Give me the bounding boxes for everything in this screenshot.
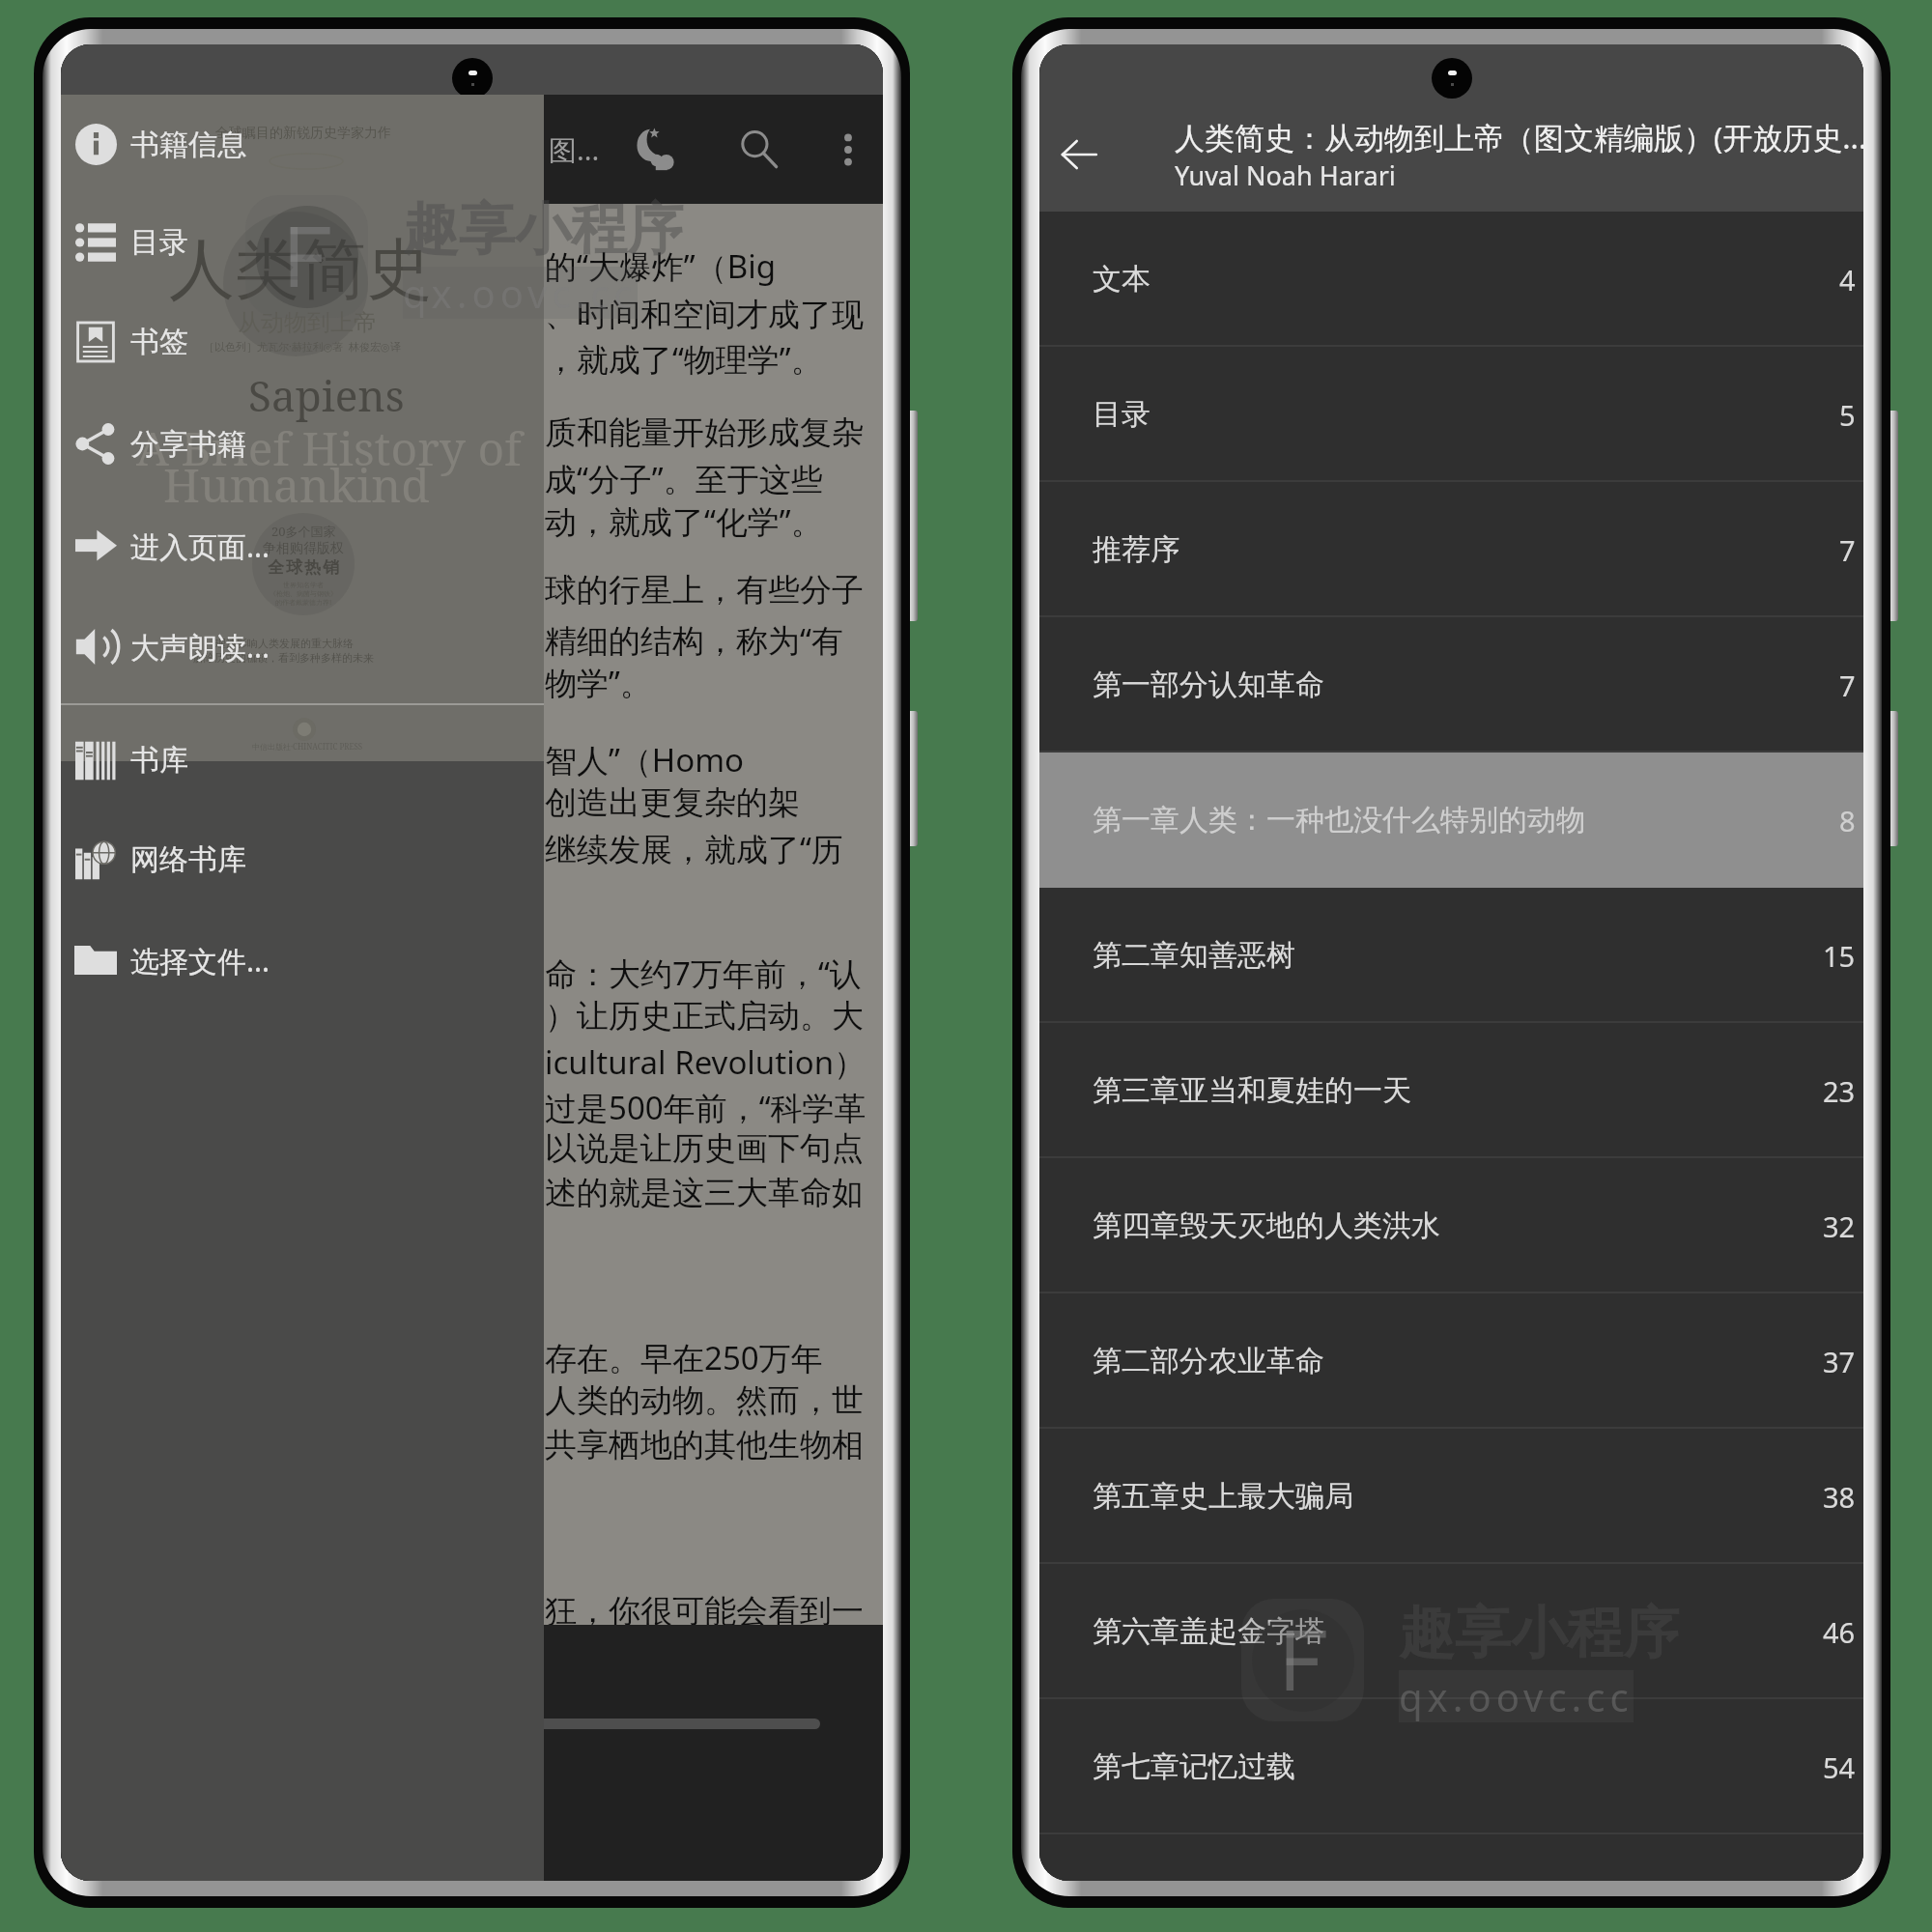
staticText: 54 xyxy=(1823,1748,1856,1786)
button[interactable]: 大声朗读... xyxy=(61,597,544,696)
button[interactable]: 第一章人类：一种也没什么特别的动物 xyxy=(1039,753,1863,888)
staticText: ，就成了“物理学”。 xyxy=(545,337,823,381)
staticText: 的作者戴蒙德力荐! xyxy=(275,598,332,608)
button[interactable]: 选择文件... xyxy=(61,909,544,1011)
staticText: 书签 xyxy=(130,324,188,360)
staticText: 4 xyxy=(1839,261,1856,298)
staticText: 图... xyxy=(549,130,600,169)
staticText: 23 xyxy=(1823,1072,1856,1110)
staticText: 分享书籍 xyxy=(130,426,246,463)
staticText: 过是500年前，“科学革 xyxy=(545,1086,867,1129)
staticText: 解除历史的枷锁，看到多种多样的未来 xyxy=(193,651,374,665)
staticText: 的“大爆炸”（Big xyxy=(545,244,776,288)
staticText: 第六章盖起金字塔 xyxy=(1093,1613,1823,1650)
button[interactable]: 第七章记忆过载 xyxy=(1039,1699,1863,1834)
staticText: 7 xyxy=(1839,667,1856,704)
staticText: 书籍信息 xyxy=(130,127,246,163)
staticText: 狂，你很可能会看到一 xyxy=(545,1591,864,1632)
staticText: 5 xyxy=(1839,396,1856,434)
staticText: A Brief History of xyxy=(136,416,522,479)
button[interactable]: 进入页面... xyxy=(61,495,544,597)
staticText: 争相购得版权 xyxy=(263,540,344,557)
staticText: 述的就是这三大革命如 xyxy=(545,1173,864,1213)
button[interactable]: 第五章史上最大骗局 xyxy=(1039,1429,1863,1564)
staticText: 共享栖地的其他生物相 xyxy=(545,1425,864,1465)
staticText: qx.oovc.cc xyxy=(403,267,638,319)
staticText: 从动物到上帝 xyxy=(238,308,377,337)
staticText: 32 xyxy=(1823,1207,1856,1245)
button[interactable]: 书籍信息 xyxy=(61,95,544,194)
staticText: 中信出版社·CHINACITIC PRESS xyxy=(252,741,363,752)
staticText: 精细的结构，称为“有 xyxy=(545,618,843,662)
staticText: 目录 xyxy=(130,224,188,261)
staticText: 第一章人类：一种也没什么特别的动物 xyxy=(1093,802,1839,838)
button[interactable]: 书签 xyxy=(61,291,544,393)
staticText: Yuval Noah Harari xyxy=(1175,157,1396,193)
staticText: 人类的动物。然而，世 xyxy=(545,1380,864,1421)
staticText: 大声朗读... xyxy=(130,627,270,667)
button[interactable]: Back xyxy=(1039,98,1119,212)
staticText: 8 xyxy=(1839,802,1856,839)
button[interactable]: 目录 xyxy=(1039,347,1863,482)
staticText: 存在。早在250万年 xyxy=(545,1336,823,1379)
staticText: 趣享小程序 xyxy=(403,194,683,265)
staticText: 创造出更复杂的架 xyxy=(545,782,800,823)
staticText: 网络书库 xyxy=(130,841,246,878)
button[interactable]: More options xyxy=(812,95,883,204)
staticText: 进入页面... xyxy=(130,526,270,566)
staticText: 质和能量开始形成复杂 xyxy=(545,412,864,453)
staticText: Sapiens xyxy=(248,366,405,424)
staticText: 第一部分认知革命 xyxy=(1093,667,1839,703)
staticText: 第四章毁天灭地的人类洪水 xyxy=(1093,1207,1823,1244)
staticText: 选择文件... xyxy=(130,941,270,980)
staticText: 世界知名学者 xyxy=(283,581,324,589)
button[interactable]: 分享书籍 xyxy=(61,393,544,495)
staticText: 继续发展，就成了“历 xyxy=(545,827,843,870)
button[interactable]: 第三章亚当和夏娃的一天 xyxy=(1039,1023,1863,1158)
button[interactable]: 第一部分认知革命 xyxy=(1039,617,1863,753)
staticText: 文本 xyxy=(1093,261,1839,298)
button[interactable]: 目录 xyxy=(61,194,544,291)
button[interactable]: Search xyxy=(706,95,812,204)
staticText: Humankind xyxy=(163,453,430,516)
staticText: qx.oovc.cc xyxy=(1399,1670,1634,1722)
staticText: 第七章记忆过载 xyxy=(1093,1748,1823,1785)
staticText: 7 xyxy=(1839,531,1856,569)
staticText: 趣享小程序 xyxy=(1399,1598,1679,1668)
staticText: icultural Revolution） xyxy=(545,1040,867,1084)
staticText: 第三章亚当和夏娃的一天 xyxy=(1093,1072,1823,1109)
button[interactable]: 第六章盖起金字塔 xyxy=(1039,1564,1863,1699)
staticText: 38 xyxy=(1823,1478,1856,1516)
button[interactable]: 网络书库 xyxy=(61,810,544,909)
button[interactable]: 文本 xyxy=(1039,212,1863,347)
staticText: 智人”（Homo xyxy=(545,738,745,781)
button[interactable]: 推荐序 xyxy=(1039,482,1863,617)
button[interactable]: Reading progress xyxy=(61,1625,883,1881)
staticText: ）让历史正式启动。大 xyxy=(545,996,864,1037)
staticText: 37 xyxy=(1823,1343,1856,1380)
staticText: 15 xyxy=(1823,937,1856,975)
staticText: 书库 xyxy=(130,742,188,779)
button[interactable]: Night mode xyxy=(600,95,706,204)
staticText: 第二章知善恶树 xyxy=(1093,937,1823,974)
staticText: 20多个国家 xyxy=(271,523,336,540)
staticText: 、时间和空间才成了现 xyxy=(545,295,864,335)
button[interactable]: 第四章毁天灭地的人类洪水 xyxy=(1039,1158,1863,1293)
staticText: 《枪炮、病菌与钢铁》 xyxy=(270,589,337,598)
staticText: 全球瞩目的新锐历史学家力作 xyxy=(215,125,391,142)
staticText: 46 xyxy=(1823,1613,1856,1651)
staticText: 第二部分农业革命 xyxy=(1093,1343,1823,1379)
staticText: 命：大约7万年前，“认 xyxy=(545,952,862,995)
staticText: 全球热销 xyxy=(267,557,340,578)
staticText: ［以色列］尤瓦尔·赫拉利◎著 林俊宏◎译 xyxy=(204,339,401,354)
staticText: 球的行星上，有些分子 xyxy=(545,570,864,611)
staticText: 推荐序 xyxy=(1093,531,1839,568)
staticText: 人类简史 xyxy=(169,229,432,312)
button[interactable]: 第二部分农业革命 xyxy=(1039,1293,1863,1429)
button[interactable]: 第二章知善恶树 xyxy=(1039,888,1863,1023)
staticText: 人类简史：从动物到上帝（图文精编版）(开放历史... xyxy=(1175,117,1863,157)
staticText: 物学”。 xyxy=(545,661,652,704)
button[interactable]: 书库 xyxy=(61,710,544,810)
staticText: 动，就成了“化学”。 xyxy=(545,499,823,543)
